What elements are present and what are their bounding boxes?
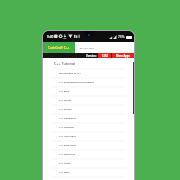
button[interactable]: C++ Basic	[43, 87, 134, 96]
staticText: C++ Tutorial	[54, 61, 76, 66]
button[interactable]: C++ Output	[43, 105, 134, 114]
button[interactable]: C++ Operators	[43, 150, 134, 159]
button[interactable]: C++ User Input	[43, 132, 134, 141]
button[interactable]: C++ Variables	[43, 123, 134, 132]
staticText: More Apps	[116, 54, 130, 58]
staticText: C++ User Input	[59, 135, 76, 138]
staticText: C++ Comments	[59, 117, 76, 120]
staticText: 1.0.0	[102, 54, 108, 58]
button[interactable]: C++ Development Environment	[43, 78, 134, 87]
staticText: C++ Output	[59, 108, 72, 111]
button[interactable]: More Apps	[112, 53, 134, 58]
staticText: 9:40	[47, 35, 54, 39]
staticText: C++ Math	[59, 171, 70, 174]
button[interactable]: C++ Data Types	[43, 141, 134, 150]
button[interactable]: 1.0.0	[98, 53, 111, 58]
staticText: CodeCraft C++	[48, 46, 70, 50]
staticText: C++ Basic	[59, 90, 70, 93]
staticText: C++ Operators	[59, 153, 76, 156]
staticText: C++ Variables	[59, 126, 74, 129]
staticText: By Piet Apps	[80, 46, 94, 49]
staticText: C++ Data Types	[59, 144, 77, 147]
staticText: C++ Development Environment	[59, 81, 94, 84]
button[interactable]: CodeCraft C++	[43, 42, 75, 53]
button[interactable]: C++ Syntax	[43, 96, 134, 105]
staticText: C++ String	[59, 162, 71, 165]
button[interactable]: C++ Math	[43, 168, 134, 177]
staticText: C++ Syntax	[59, 99, 72, 102]
staticText: 75%	[118, 35, 125, 39]
button[interactable]: C++ String	[43, 159, 134, 168]
staticText: Introduction to C++	[59, 72, 81, 75]
staticText: Version:	[86, 54, 97, 58]
button[interactable]: Introduction to C++	[43, 69, 134, 78]
button[interactable]: C++ Comments	[43, 114, 134, 123]
